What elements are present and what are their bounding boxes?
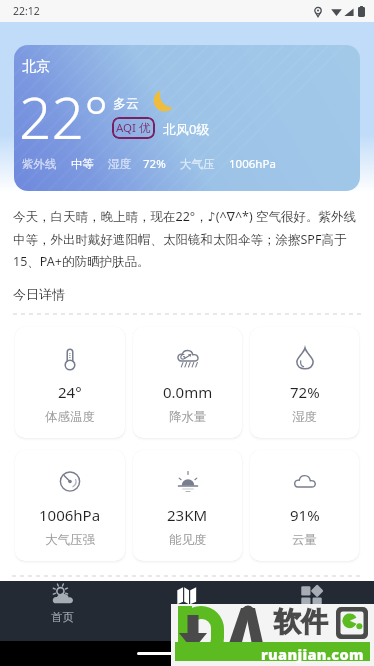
staticText: ruanjian.com [261,644,364,664]
staticText: 湿度 [108,157,131,171]
staticText: 多云 [113,95,139,111]
button[interactable]: 首页 [0,581,124,624]
staticText: 大气压 [180,157,215,171]
staticText: 22:12 [13,4,40,18]
staticText: 地图 [175,610,198,624]
staticText: 北京 [22,58,50,76]
staticText: 22° [19,78,109,156]
button[interactable]: 24° [15,327,125,438]
button[interactable]: 0.0mm [133,327,242,438]
staticText: 首页 [51,610,74,624]
staticText: 72% [143,156,166,172]
button[interactable]: 23KM [133,450,242,561]
staticText: 湿度 [292,409,317,425]
staticText: 软件 [274,605,328,639]
staticText: 紫外线 [22,157,57,171]
button[interactable]: 地图 [124,581,249,624]
staticText: 大气压强 [45,532,95,548]
staticText: 云量 [292,532,317,548]
staticText: 24° [58,382,82,402]
button[interactable]: 1006hPa [15,450,125,561]
button[interactable]: 72% [250,327,359,438]
button[interactable]: 北京 [14,45,360,191]
staticText: 体感温度 [45,409,95,425]
staticText: 23KM [167,505,208,525]
staticText: AQI 优 [116,120,151,136]
staticText: 91% [290,505,320,525]
button[interactable]: 更多 [249,581,374,624]
staticText: 1006hPa [229,156,276,172]
staticText: 今天，白天晴，晚上晴，现在22°，♪(^∇^*) 空气很好。紫外线中等，外出时戴… [13,208,361,270]
staticText: 1006hPa [39,505,101,525]
staticText: 更多 [300,610,323,624]
staticText: 今日详情 [13,286,65,302]
staticText: 中等 [71,157,94,171]
staticText: 0.0mm [163,382,213,402]
staticText: 能见度 [169,532,207,548]
staticText: 北风0级 [163,120,210,138]
button[interactable]: 91% [250,450,359,561]
staticText: 降水量 [169,409,207,425]
staticText: 72% [290,382,320,402]
